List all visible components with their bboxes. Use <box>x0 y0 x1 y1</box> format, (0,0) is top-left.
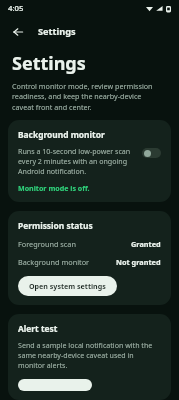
staticText: Send a sample local notification with th… <box>18 340 161 370</box>
staticText: Settings <box>12 51 86 76</box>
staticText: Control monitor mode, review permission … <box>12 81 165 112</box>
button[interactable]: Permission status <box>8 211 171 305</box>
button[interactable]: Back <box>7 21 29 43</box>
button[interactable]: Open system settings <box>18 276 117 296</box>
button[interactable]: Send test alert <box>18 379 92 391</box>
staticText: Permission status <box>18 220 93 231</box>
button[interactable]: Background monitor <box>8 120 171 202</box>
staticText: Open system settings <box>29 281 106 291</box>
staticText: Monitor mode is off. <box>18 183 90 193</box>
staticText: Background monitor <box>18 257 90 267</box>
staticText: Runs a 10-second low-power scan every 2 … <box>18 146 134 176</box>
staticText: 4:05 <box>8 3 24 14</box>
button[interactable]: Alert test <box>8 314 171 400</box>
staticText: Alert test <box>18 323 58 334</box>
staticText: Background monitor <box>18 129 105 140</box>
staticText: Not granted <box>116 257 161 267</box>
staticText: Granted <box>131 239 161 249</box>
button[interactable]: Background monitor toggle, off <box>142 148 161 158</box>
staticText: Foreground scan <box>18 239 76 249</box>
staticText: Settings <box>38 25 76 38</box>
